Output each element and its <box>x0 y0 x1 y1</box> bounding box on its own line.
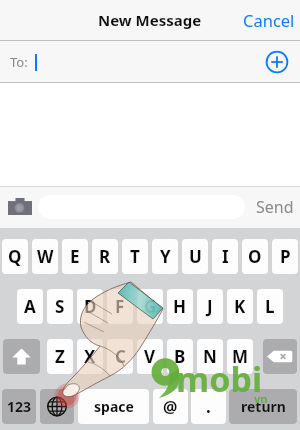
staticText: C <box>115 345 126 368</box>
staticText: mobi <box>176 356 263 402</box>
button[interactable]: H <box>167 289 193 324</box>
staticText: A <box>24 295 36 318</box>
button[interactable]: R <box>92 239 118 274</box>
staticText: I <box>222 245 229 268</box>
staticText: B <box>174 345 186 368</box>
button[interactable]: Z <box>47 339 73 374</box>
button[interactable]: 123 <box>2 389 36 424</box>
button[interactable]: L <box>257 289 283 324</box>
button[interactable]: D <box>77 289 103 324</box>
staticText: @ <box>163 396 178 418</box>
button[interactable]: M <box>227 339 253 374</box>
button[interactable]: T <box>122 239 148 274</box>
button[interactable]: I <box>212 239 238 274</box>
staticText: Cancel <box>243 9 295 31</box>
staticText: To: <box>10 53 28 71</box>
staticText: S <box>55 295 65 318</box>
button[interactable]: return <box>229 389 297 424</box>
button[interactable]: F <box>107 289 133 324</box>
staticText: U <box>189 245 202 268</box>
button[interactable]: Y <box>152 239 178 274</box>
staticText: F <box>115 295 125 318</box>
staticText: W <box>37 245 54 268</box>
staticText: 123 <box>7 397 32 416</box>
button[interactable]: Switch keyboard <box>40 389 74 424</box>
staticText: J <box>207 295 213 318</box>
staticText: P <box>280 245 291 268</box>
button[interactable]: Shift <box>3 339 40 374</box>
button[interactable]: S <box>47 289 73 324</box>
staticText: Send <box>256 196 294 218</box>
staticText: K <box>234 295 246 318</box>
button[interactable]: W <box>32 239 58 274</box>
button[interactable]: G <box>137 289 163 324</box>
button[interactable]: P <box>272 239 298 274</box>
button[interactable]: K <box>227 289 253 324</box>
staticText: L <box>265 295 275 318</box>
button[interactable]: . <box>191 389 226 424</box>
staticText: space <box>94 397 134 416</box>
button[interactable]: V <box>137 339 163 374</box>
button[interactable]: Camera <box>8 198 32 215</box>
staticText: T <box>130 245 140 268</box>
staticText: Q <box>8 245 22 268</box>
button[interactable]: O <box>242 239 268 274</box>
staticText: E <box>70 245 80 268</box>
staticText: . <box>206 395 211 418</box>
button[interactable]: space <box>78 389 149 424</box>
button[interactable]: Q <box>2 239 28 274</box>
staticText: vn <box>254 391 268 406</box>
staticText: G <box>144 295 157 318</box>
button[interactable]: J <box>197 289 223 324</box>
staticText: H <box>173 295 187 318</box>
staticText: X <box>84 345 96 368</box>
staticText: R <box>99 245 111 268</box>
button[interactable]: X <box>77 339 103 374</box>
staticText: M <box>232 345 249 368</box>
button[interactable]: N <box>197 339 223 374</box>
button[interactable]: @ <box>153 389 188 424</box>
button[interactable]: Backspace <box>263 339 297 374</box>
staticText: O <box>248 245 262 268</box>
staticText: Z <box>55 345 65 368</box>
button[interactable]: C <box>107 339 133 374</box>
staticText: New Message <box>98 10 202 30</box>
button[interactable]: E <box>62 239 88 274</box>
button[interactable]: B <box>167 339 193 374</box>
button[interactable]: Add contact <box>265 50 289 74</box>
staticText: Y <box>160 245 171 268</box>
staticText: V <box>144 345 156 368</box>
staticText: return <box>241 397 286 416</box>
button[interactable]: A <box>17 289 43 324</box>
staticText: D <box>84 295 97 318</box>
button[interactable]: U <box>182 239 208 274</box>
button[interactable]: Cancel <box>238 0 300 40</box>
staticText: N <box>203 345 217 368</box>
button[interactable]: Send <box>250 191 300 223</box>
